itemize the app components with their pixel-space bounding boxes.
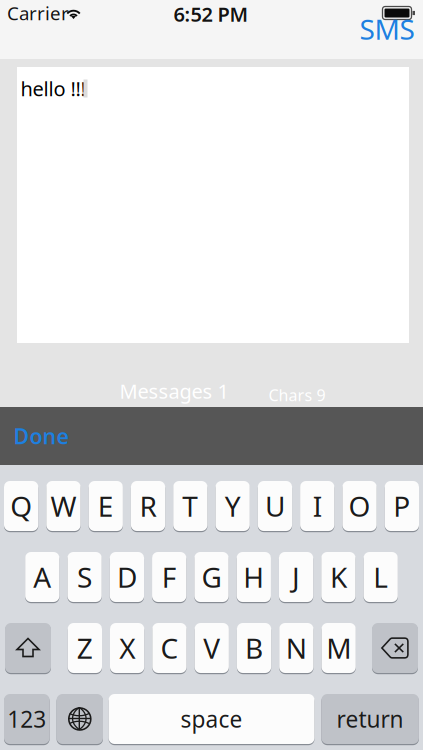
staticText: hello !!!	[20, 75, 85, 102]
staticText: X	[119, 629, 135, 667]
button[interactable]: SMS	[352, 15, 422, 43]
staticText: I	[313, 487, 322, 525]
button[interactable]: O	[0, 0, 423, 750]
staticText: Messages 1	[119, 378, 228, 404]
staticText: U	[265, 487, 285, 525]
staticText: Done	[13, 422, 68, 450]
button[interactable]: H	[0, 0, 423, 750]
staticText: Chars 9	[268, 384, 325, 406]
staticText: V	[203, 629, 220, 667]
button[interactable]: 123	[0, 0, 423, 750]
staticText: L	[373, 558, 388, 596]
staticText: R	[139, 487, 156, 525]
button[interactable]: Done	[8, 419, 74, 453]
staticText: Z	[77, 629, 93, 667]
button[interactable]: space	[0, 0, 423, 750]
button[interactable]: U	[0, 0, 423, 750]
button[interactable]: Y	[0, 0, 423, 750]
button[interactable]: T	[0, 0, 423, 750]
button[interactable]: B	[0, 0, 423, 750]
button[interactable]: E	[0, 0, 423, 750]
staticText: W	[50, 487, 76, 525]
staticText: E	[98, 487, 114, 525]
button[interactable]: Q	[0, 0, 423, 750]
staticText: J	[292, 558, 300, 596]
staticText: 123	[7, 704, 46, 734]
staticText: P	[393, 487, 410, 525]
button[interactable]: X	[0, 0, 423, 750]
staticText: M	[326, 629, 351, 667]
button[interactable]: C	[0, 0, 423, 750]
staticText: A	[33, 558, 51, 596]
button[interactable]: A	[0, 0, 423, 750]
staticText: return	[336, 704, 403, 734]
staticText: D	[117, 558, 137, 596]
button[interactable]: Shift	[0, 0, 423, 750]
button[interactable]: Z	[0, 0, 423, 750]
staticText: Y	[225, 487, 241, 525]
staticText: space	[180, 704, 242, 734]
button[interactable]: P	[0, 0, 423, 750]
staticText: T	[182, 487, 198, 525]
button[interactable]: N	[0, 0, 423, 750]
button[interactable]: L	[0, 0, 423, 750]
staticText: Carrier	[7, 1, 69, 25]
staticText: N	[286, 629, 307, 667]
staticText: SMS	[359, 10, 414, 48]
button[interactable]: M	[0, 0, 423, 750]
staticText: 6:52 PM	[173, 1, 248, 27]
staticText: S	[77, 558, 92, 596]
button[interactable]: V	[0, 0, 423, 750]
button[interactable]: Delete	[0, 0, 423, 750]
staticText: G	[201, 558, 221, 596]
staticText: O	[348, 487, 370, 525]
button[interactable]: D	[0, 0, 423, 750]
button[interactable]: return	[0, 0, 423, 750]
button[interactable]: K	[0, 0, 423, 750]
staticText: B	[245, 629, 263, 667]
button[interactable]: J	[0, 0, 423, 750]
staticText: Q	[10, 487, 32, 525]
staticText: C	[160, 629, 178, 667]
button[interactable]: Next keyboard	[0, 0, 423, 750]
button[interactable]: R	[0, 0, 423, 750]
staticText: K	[330, 558, 347, 596]
button[interactable]: F	[0, 0, 423, 750]
button[interactable]: S	[0, 0, 423, 750]
staticText: F	[162, 558, 177, 596]
staticText: H	[243, 558, 264, 596]
button[interactable]: G	[0, 0, 423, 750]
button[interactable]: W	[0, 0, 423, 750]
button[interactable]: I	[0, 0, 423, 750]
